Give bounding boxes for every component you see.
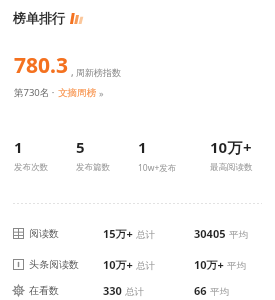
staticText: 5 bbox=[76, 137, 85, 157]
staticText: 10w+发布 bbox=[138, 162, 177, 174]
staticText: 10万 bbox=[210, 137, 243, 157]
staticText: , bbox=[71, 65, 74, 79]
button[interactable]: 第730名 · bbox=[14, 86, 104, 99]
staticText: 总计 bbox=[136, 229, 155, 241]
staticText: 平均 bbox=[210, 286, 229, 298]
button[interactable]: 阅读数 bbox=[0, 218, 275, 249]
staticText: 第730名 · bbox=[14, 86, 55, 99]
staticText: 330 bbox=[103, 283, 122, 298]
staticText: 头条阅读数 bbox=[29, 258, 103, 271]
staticText: 总计 bbox=[136, 260, 155, 272]
staticText: 10万+ bbox=[103, 257, 133, 272]
staticText: 榜单排行 bbox=[13, 10, 65, 26]
staticText: 平均 bbox=[227, 260, 246, 272]
staticText: 文摘周榜 bbox=[58, 87, 96, 99]
staticText: 最高阅读数 bbox=[210, 162, 253, 173]
staticText: » bbox=[99, 87, 104, 99]
other: 阅读数 bbox=[13, 228, 24, 239]
staticText: 1 bbox=[14, 137, 23, 157]
staticText: 1 bbox=[138, 137, 147, 157]
staticText: 平均 bbox=[229, 229, 248, 241]
staticText: 阅读数 bbox=[29, 227, 103, 240]
staticText: 10万+ bbox=[194, 257, 224, 272]
staticText: 780.3 bbox=[14, 51, 68, 80]
staticText: 在看数 bbox=[29, 284, 103, 297]
staticText: 周新榜指数 bbox=[76, 67, 121, 78]
button[interactable]: 在看数 bbox=[0, 280, 275, 300]
staticText: + bbox=[243, 137, 252, 157]
staticText: 发布篇数 bbox=[76, 162, 110, 173]
other: 在看数 bbox=[13, 285, 24, 296]
staticText: 发布次数 bbox=[14, 162, 48, 173]
staticText: 66 bbox=[194, 283, 207, 298]
staticText: 总计 bbox=[125, 286, 144, 298]
other: 头条阅读数 bbox=[13, 259, 24, 270]
staticText: 15万+ bbox=[103, 226, 133, 241]
staticText: 30405 bbox=[194, 226, 226, 241]
button[interactable]: 头条阅读数 bbox=[0, 249, 275, 280]
